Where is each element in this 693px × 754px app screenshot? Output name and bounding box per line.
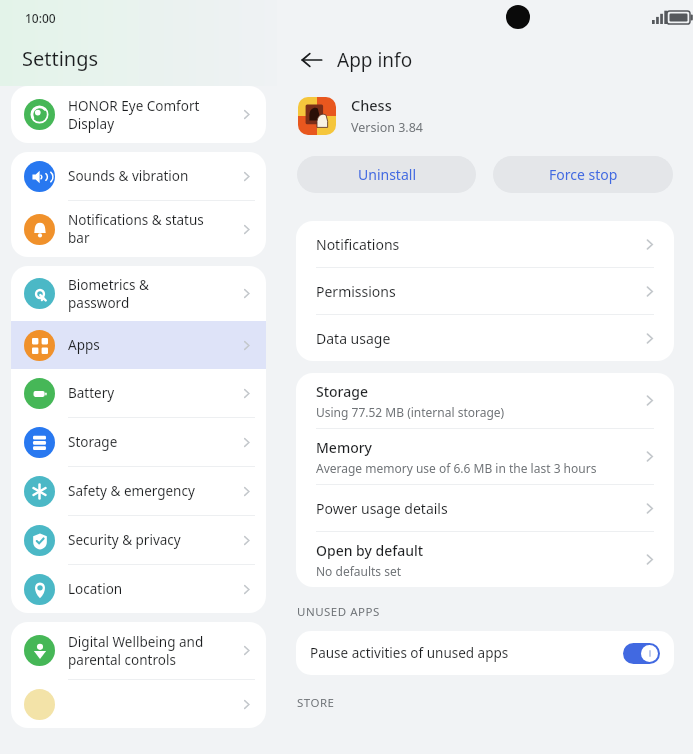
staticText: Sounds & vibration — [68, 167, 239, 185]
button[interactable]: Notifications — [296, 221, 674, 267]
button[interactable] — [11, 680, 266, 728]
button[interactable]: Back — [295, 43, 329, 77]
staticText: Power usage details — [316, 499, 448, 518]
button[interactable]: Sounds & vibration — [11, 152, 266, 200]
staticText: HONOR Eye Comfort Display — [68, 97, 239, 133]
button[interactable]: Permissions — [296, 268, 674, 314]
staticText: Digital Wellbeing and parental controls — [68, 633, 239, 669]
staticText: Apps — [68, 336, 239, 354]
staticText: Notifications & status bar — [68, 211, 239, 247]
staticText: Battery — [68, 384, 239, 402]
staticText: Open by default — [316, 541, 424, 560]
button[interactable]: Pause activities of unused apps — [296, 631, 674, 675]
button[interactable]: Memory — [296, 429, 674, 484]
button[interactable]: HONOR Eye Comfort Display — [11, 86, 266, 143]
staticText: Safety & emergency — [68, 482, 239, 500]
button[interactable]: Digital Wellbeing and parental controls — [11, 622, 266, 679]
staticText: Storage — [68, 433, 239, 451]
button[interactable]: Storage — [11, 418, 266, 466]
button[interactable]: Storage — [296, 373, 674, 428]
button[interactable]: Notifications & status bar — [11, 201, 266, 257]
staticText: Force stop — [549, 165, 618, 184]
button[interactable]: Open by default — [296, 532, 674, 587]
staticText: Pause activities of unused apps — [310, 644, 623, 662]
staticText: Location — [68, 580, 239, 598]
staticText: No defaults set — [316, 563, 402, 579]
staticText: App info — [337, 47, 413, 73]
button[interactable]: Force stop — [493, 156, 673, 193]
staticText: Uninstall — [358, 165, 416, 184]
staticText: Version 3.84 — [351, 119, 424, 136]
staticText: Using 77.52 MB (internal storage) — [316, 404, 505, 420]
button[interactable]: Biometrics & password — [11, 266, 266, 321]
staticText: UNUSED APPS — [297, 604, 380, 620]
staticText: Settings — [22, 45, 99, 72]
staticText: Notifications — [316, 235, 400, 254]
staticText: Chess — [351, 95, 392, 115]
staticText: Biometrics & password — [68, 276, 239, 312]
staticText: Average memory use of 6.6 MB in the last… — [316, 460, 597, 476]
staticText: 10:00 — [25, 10, 56, 26]
staticText: STORE — [297, 695, 335, 711]
staticText: Storage — [316, 382, 368, 401]
button[interactable]: Location — [11, 565, 266, 613]
button[interactable]: Uninstall — [297, 156, 476, 193]
staticText: Memory — [316, 438, 373, 457]
button[interactable]: Security & privacy — [11, 516, 266, 564]
staticText: Permissions — [316, 282, 396, 301]
button[interactable]: Power usage details — [296, 485, 674, 531]
button[interactable]: Apps — [11, 321, 266, 369]
button[interactable]: Battery — [11, 369, 266, 417]
button[interactable]: Safety & emergency — [11, 467, 266, 515]
button[interactable]: Data usage — [296, 315, 674, 361]
staticText: Security & privacy — [68, 531, 239, 549]
staticText: Data usage — [316, 329, 391, 348]
